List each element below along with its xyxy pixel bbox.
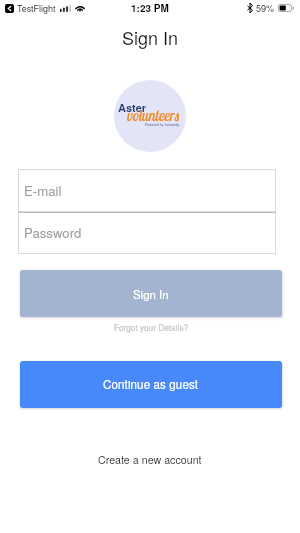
staticText: Sign In xyxy=(133,286,169,302)
staticText: Create a new account xyxy=(98,452,202,467)
button[interactable]: E-mail xyxy=(18,169,276,212)
button[interactable]: Create a new account xyxy=(90,449,210,470)
staticText: Aster xyxy=(118,100,147,116)
staticText: TestFlight xyxy=(17,2,56,15)
button[interactable]: Password xyxy=(18,211,276,254)
staticText: volunteers xyxy=(127,106,180,124)
staticText: Continue as guest xyxy=(103,376,199,393)
button[interactable]: Forgot your Details? xyxy=(108,319,195,335)
staticText: 59% xyxy=(256,2,275,15)
staticText: Forgot your Details? xyxy=(114,321,189,333)
staticText: E-mail xyxy=(24,181,62,200)
button[interactable]: Continue as guest xyxy=(20,361,282,408)
staticText: Sign In xyxy=(122,24,179,50)
button[interactable]: Sign In xyxy=(20,270,282,317)
staticText: 1:23 PM xyxy=(131,1,169,15)
staticText: Password xyxy=(24,223,82,242)
staticText: Powered by humanity xyxy=(145,122,180,127)
